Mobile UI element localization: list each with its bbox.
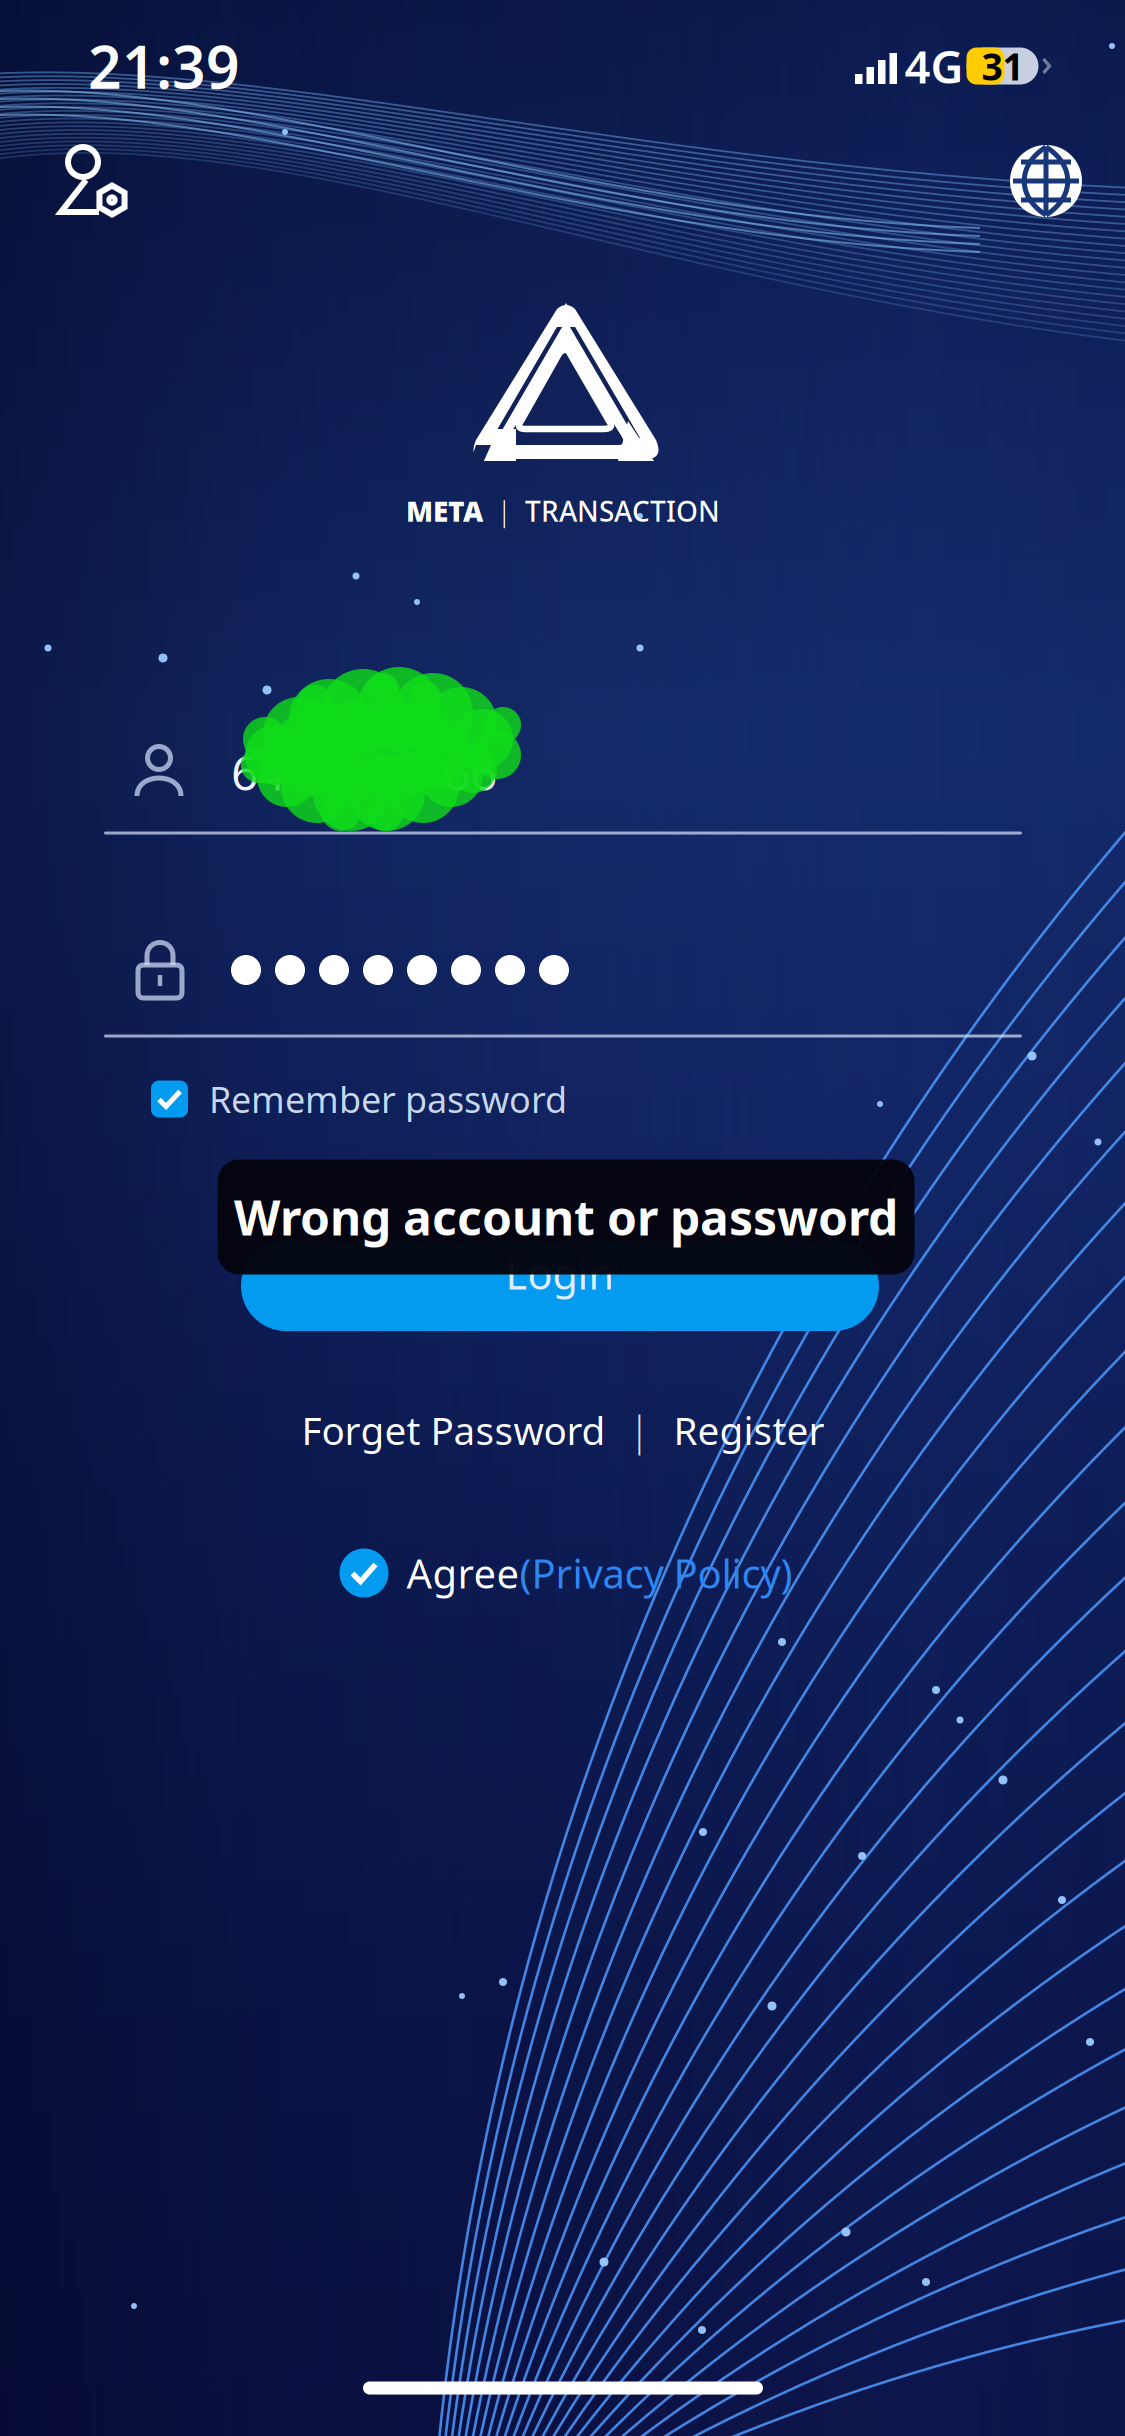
staticText: Register: [673, 1404, 824, 1456]
staticText: TRANSACTION: [525, 492, 720, 530]
button[interactable]: Remember password: [143, 1061, 575, 1137]
staticText: 6410****66: [231, 740, 497, 804]
staticText: Remember password: [209, 1075, 567, 1123]
button[interactable]: Agree: [339, 1534, 792, 1611]
button[interactable]: Account: [36, 123, 156, 243]
staticText: |: [628, 1403, 650, 1456]
button[interactable]: Language: [991, 126, 1101, 236]
button[interactable]: Register: [667, 1394, 830, 1466]
staticText: Agree: [406, 1546, 519, 1599]
staticText: Login: [505, 1246, 614, 1301]
staticText: 21:39: [88, 27, 240, 105]
staticText: 4G: [904, 36, 963, 96]
staticText: 31: [981, 41, 1023, 91]
staticText: Forget Password: [301, 1404, 605, 1456]
staticText: Wrong account or password: [234, 1185, 898, 1249]
button[interactable]: Login: [241, 1241, 879, 1331]
button[interactable]: Forget Password: [295, 1394, 611, 1466]
staticText: META: [406, 492, 483, 530]
staticText: (Privacy Policy): [519, 1546, 792, 1599]
staticText: |: [483, 493, 525, 529]
